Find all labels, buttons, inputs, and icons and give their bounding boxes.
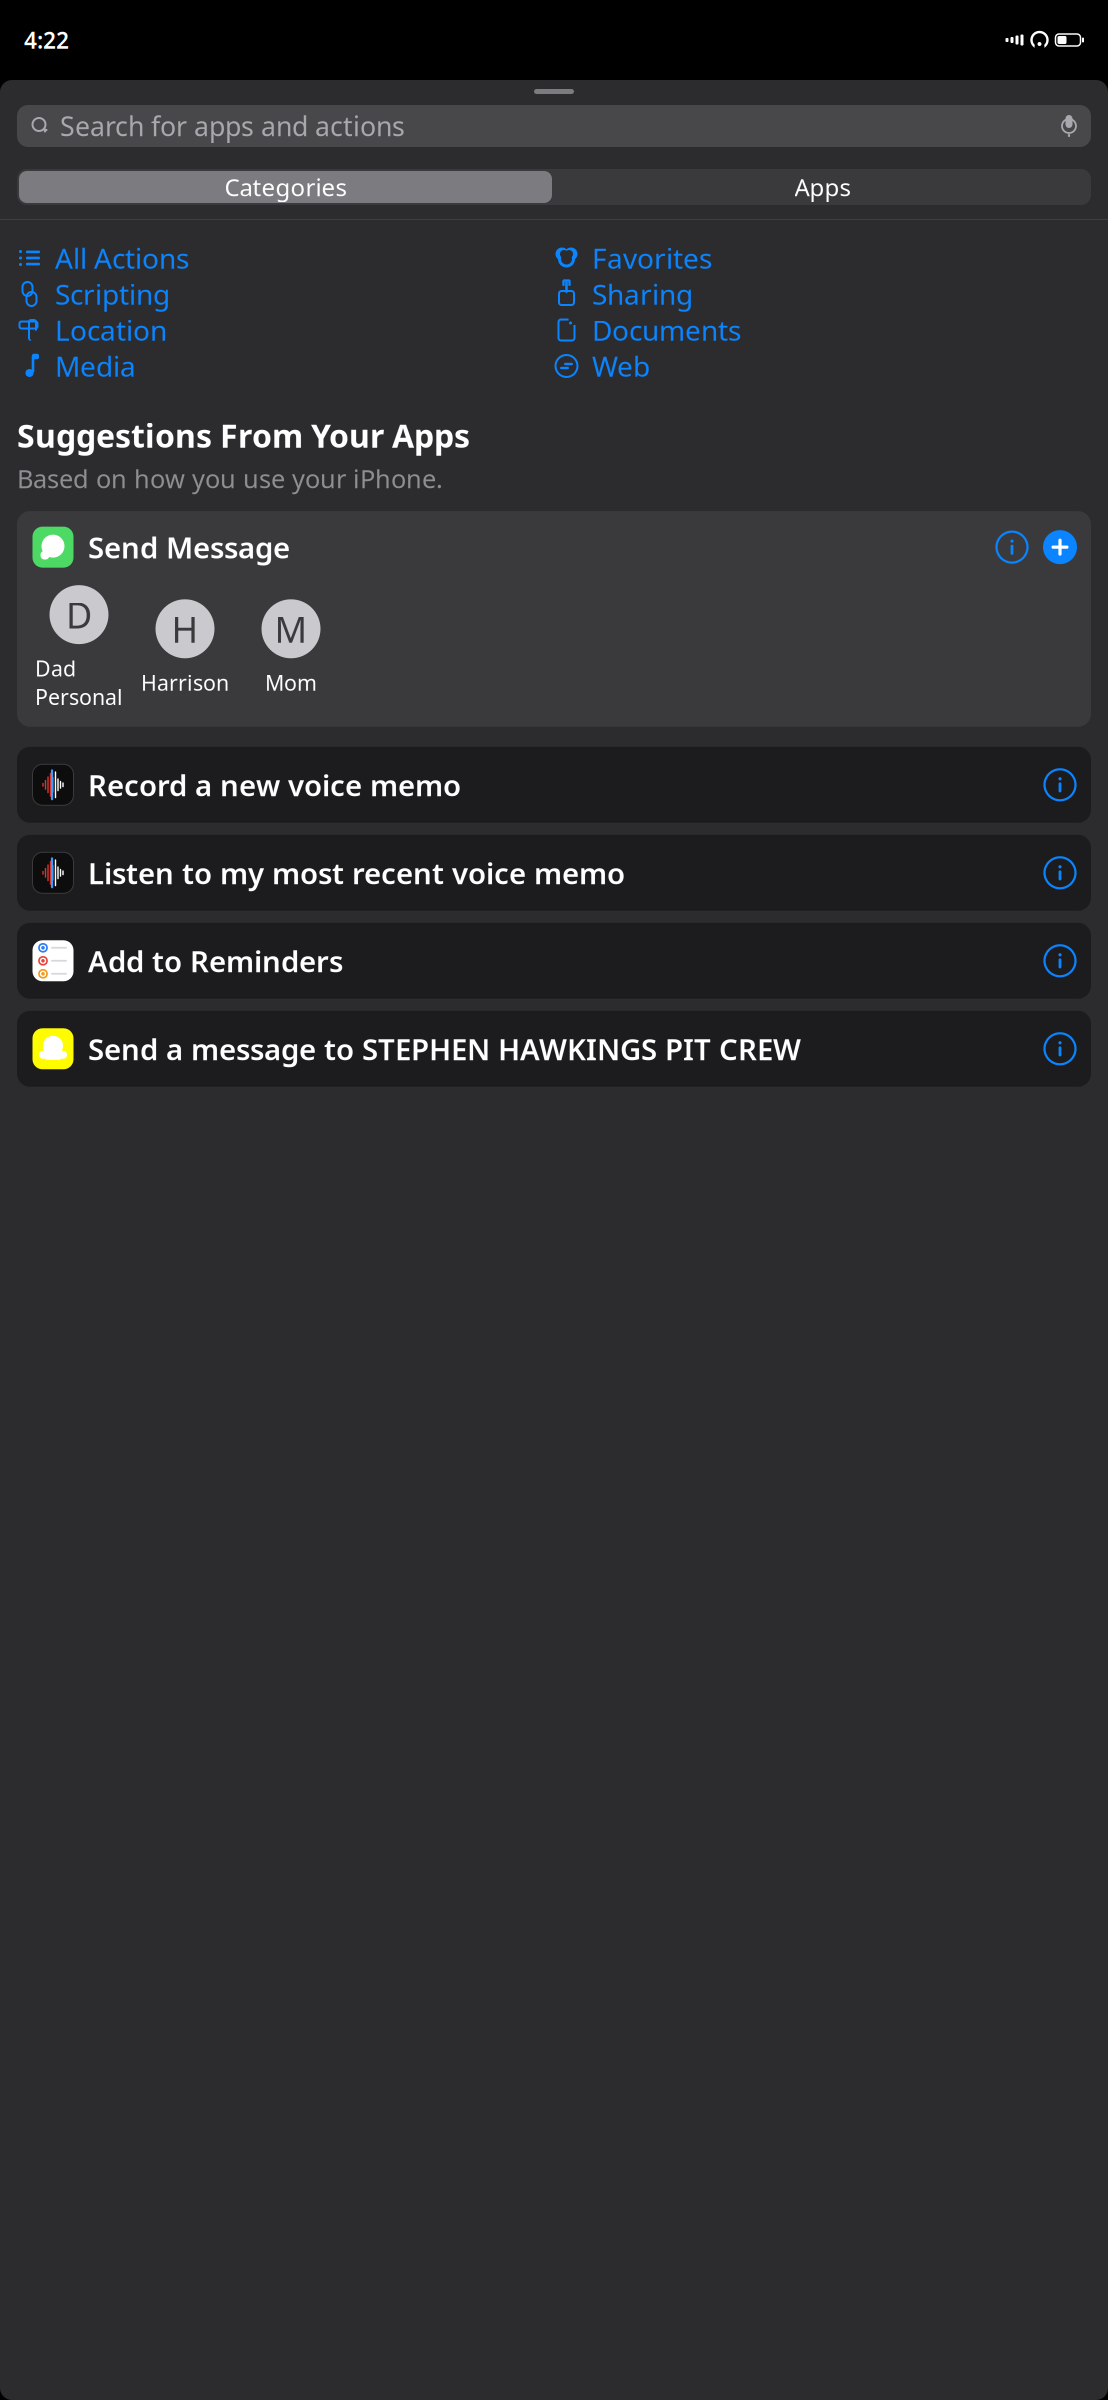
- staticText: Media: [55, 347, 136, 385]
- button[interactable]: Send a message to STEPHEN HAWKINGS PIT C…: [17, 1011, 1091, 1087]
- staticText: Send Message: [88, 528, 290, 567]
- staticText: M: [274, 605, 307, 653]
- button[interactable]: D: [26, 585, 132, 711]
- button[interactable]: Add to Reminders: [17, 923, 1091, 999]
- button[interactable]: Add Send Message: [1043, 530, 1077, 564]
- button[interactable]: Info: [1043, 1032, 1077, 1066]
- staticText: Scripting: [55, 275, 170, 313]
- staticText: Mom: [265, 668, 317, 697]
- button[interactable]: M: [238, 599, 344, 697]
- button[interactable]: Info about Send Message: [995, 530, 1029, 564]
- staticText: Listen to my most recent voice memo: [88, 853, 625, 892]
- button[interactable]: Record a new voice memo: [17, 747, 1091, 823]
- staticText: All Actions: [55, 239, 189, 277]
- staticText: Search for apps and actions: [60, 108, 405, 144]
- staticText: Based on how you use your iPhone.: [17, 461, 443, 495]
- staticText: Harrison: [141, 668, 229, 697]
- button[interactable]: Sharing: [554, 276, 1091, 312]
- staticText: Sharing: [592, 275, 693, 313]
- button[interactable]: H: [132, 599, 238, 697]
- button[interactable]: Info: [1043, 768, 1077, 802]
- staticText: D: [66, 591, 92, 638]
- button[interactable]: Documents: [554, 312, 1091, 348]
- button[interactable]: All Actions: [17, 240, 554, 276]
- staticText: Dad Personal: [35, 654, 123, 711]
- staticText: 4:22: [24, 25, 69, 55]
- button[interactable]: Location: [17, 312, 554, 348]
- button[interactable]: Search for apps and actions: [17, 105, 1091, 147]
- staticText: Record a new voice memo: [88, 765, 461, 804]
- button[interactable]: Info: [1043, 856, 1077, 890]
- staticText: Apps: [794, 171, 850, 203]
- staticText: Send a message to STEPHEN HAWKINGS PIT C…: [88, 1029, 801, 1068]
- staticText: Add to Reminders: [88, 941, 343, 980]
- staticText: H: [171, 605, 198, 653]
- button[interactable]: Apps: [554, 169, 1091, 205]
- staticText: Documents: [592, 311, 741, 349]
- staticText: Categories: [224, 171, 346, 203]
- staticText: Suggestions From Your Apps: [17, 414, 470, 456]
- button[interactable]: Web: [554, 348, 1091, 384]
- button[interactable]: Info: [1043, 944, 1077, 978]
- staticText: Favorites: [592, 239, 712, 277]
- staticText: Location: [55, 311, 167, 349]
- button[interactable]: Media: [17, 348, 554, 384]
- staticText: Web: [592, 347, 650, 385]
- button[interactable]: Favorites: [554, 240, 1091, 276]
- button[interactable]: Scripting: [17, 276, 554, 312]
- button[interactable]: Categories: [17, 169, 554, 205]
- button[interactable]: Listen to my most recent voice memo: [17, 835, 1091, 911]
